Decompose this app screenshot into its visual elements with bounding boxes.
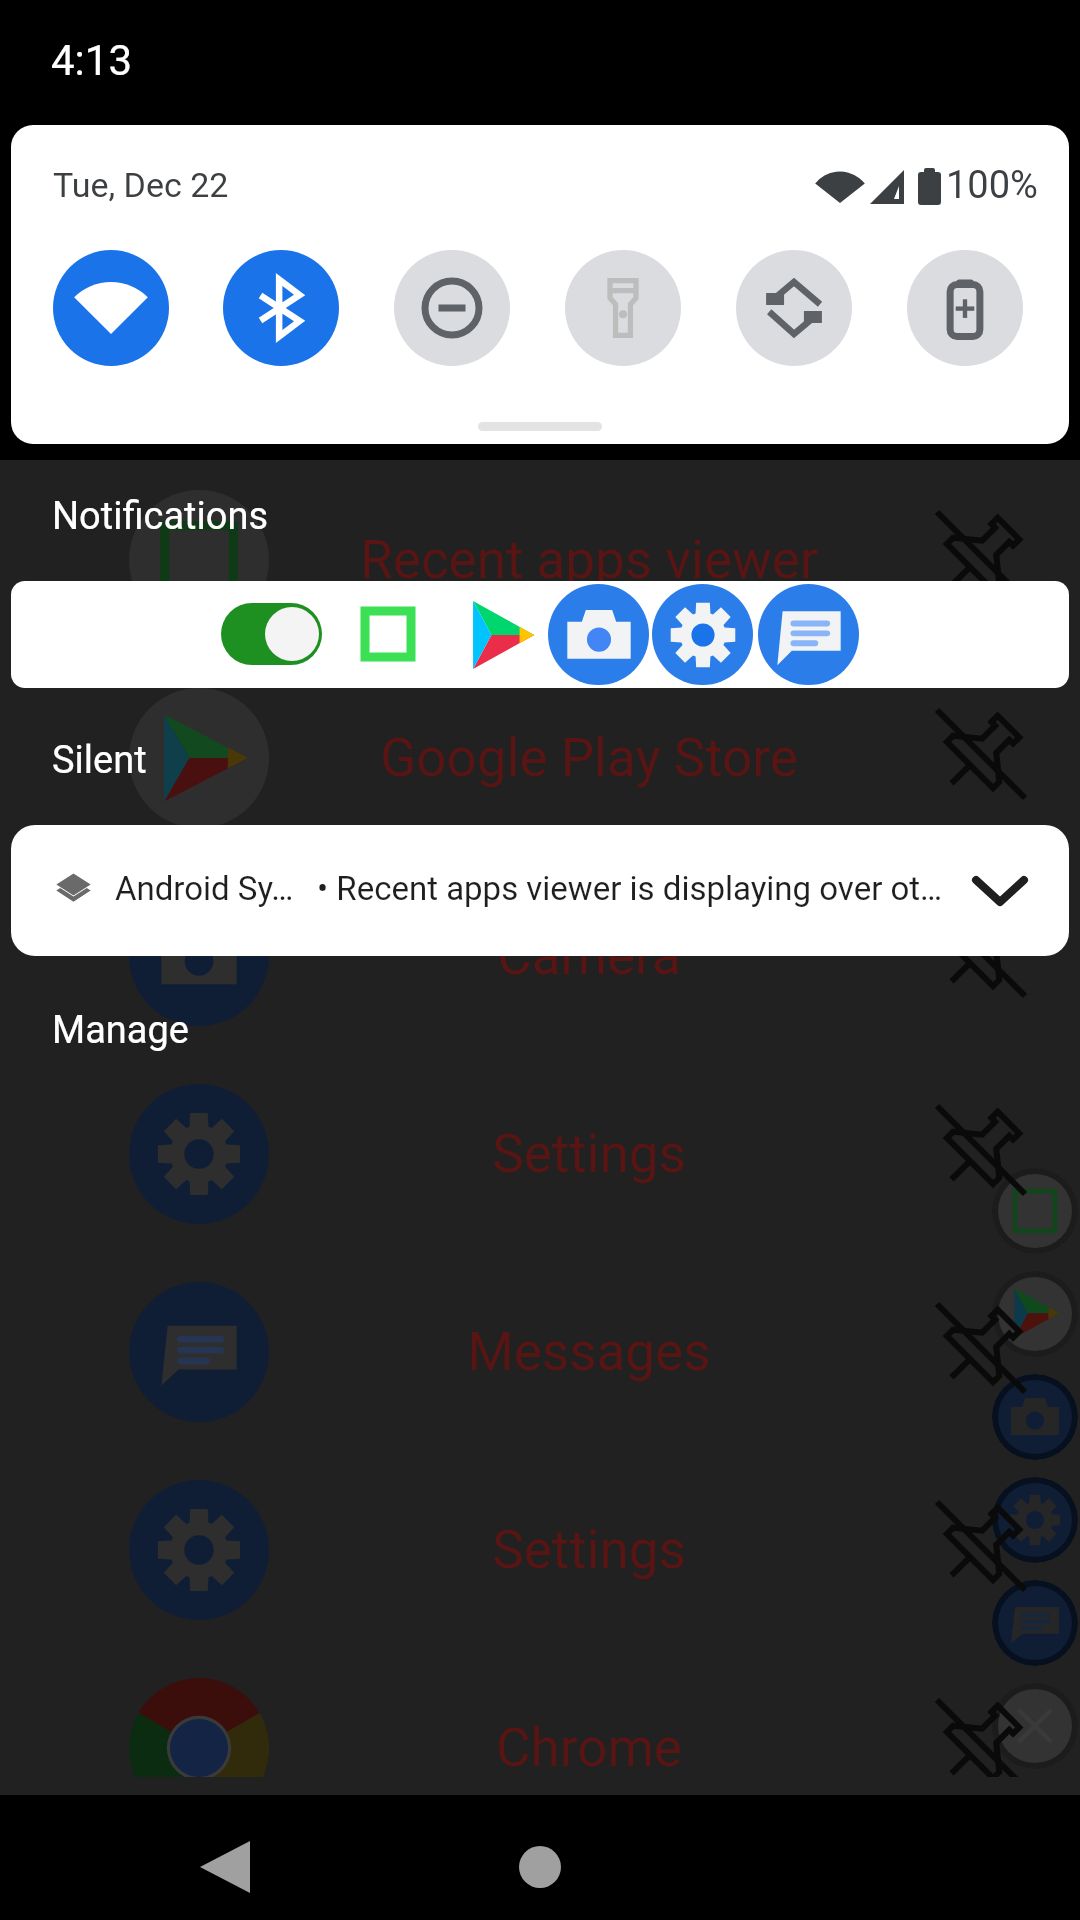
staticText: Recent apps viewer xyxy=(360,529,818,591)
staticText: • Recent apps viewer is displaying over … xyxy=(317,869,943,908)
button[interactable]: Messages xyxy=(758,584,859,685)
button[interactable]: Expand notification xyxy=(955,861,1045,921)
staticText: Chrome xyxy=(496,1717,682,1777)
staticText: Notifications xyxy=(52,494,269,539)
staticText: Android Sy… xyxy=(115,869,294,908)
button[interactable]: Messages xyxy=(0,1253,1080,1451)
button[interactable]: Unpin Camera xyxy=(913,886,1053,1026)
button[interactable]: Settings xyxy=(992,1477,1078,1563)
button[interactable]: Back xyxy=(165,1807,285,1920)
button[interactable]: Unpin Settings xyxy=(913,1480,1053,1620)
button[interactable]: Unpin Messages xyxy=(913,1282,1053,1422)
button[interactable]: Wi-Fi xyxy=(53,250,169,366)
staticText: Settings xyxy=(492,1519,686,1581)
button[interactable]: Google Play Store xyxy=(992,1271,1078,1357)
button[interactable]: Google Play Store xyxy=(463,595,543,675)
button[interactable]: Camera xyxy=(548,584,649,685)
staticText: Settings xyxy=(492,1123,686,1185)
staticText: 100% xyxy=(946,163,1038,208)
button[interactable]: Settings xyxy=(0,1055,1080,1253)
button[interactable]: Home xyxy=(480,1807,600,1920)
staticText: Tue, Dec 22 xyxy=(53,165,229,205)
button[interactable]: Android Sy… xyxy=(11,825,1069,956)
staticText: Manage xyxy=(52,1008,189,1053)
staticText: Google Play Store xyxy=(380,727,798,789)
button[interactable]: Stop overlay xyxy=(992,1168,1078,1254)
staticText: Camera xyxy=(497,925,681,987)
button[interactable]: Settings xyxy=(0,1451,1080,1649)
button[interactable]: Camera xyxy=(992,1374,1078,1460)
button[interactable]: Messages xyxy=(992,1580,1078,1666)
button[interactable]: Stop overlay xyxy=(361,607,415,661)
button[interactable]: Close xyxy=(992,1683,1078,1769)
button[interactable]: Battery saver xyxy=(907,250,1023,366)
button[interactable]: Bluetooth xyxy=(223,250,339,366)
button[interactable]: Unpin Recent apps viewer xyxy=(913,490,1053,630)
button[interactable]: Google Play Store xyxy=(0,659,1080,857)
staticText: Messages xyxy=(467,1321,711,1383)
button[interactable]: Flashlight xyxy=(565,250,681,366)
button[interactable]: Unpin Settings xyxy=(913,1084,1053,1224)
button[interactable]: Toggle overlay xyxy=(221,603,322,665)
button[interactable]: Chrome xyxy=(0,1649,1080,1777)
button[interactable]: Auto-rotate xyxy=(736,250,852,366)
button[interactable]: Unpin Google Play Store xyxy=(913,688,1053,828)
button[interactable]: Settings xyxy=(652,584,753,685)
staticText: 4:13 xyxy=(51,36,132,85)
button[interactable]: Recent apps viewer xyxy=(0,461,1080,659)
staticText: Silent xyxy=(52,738,147,783)
button[interactable]: Camera xyxy=(0,857,1080,1055)
button[interactable]: Unpin Chrome xyxy=(913,1678,1053,1777)
button[interactable]: Do not disturb xyxy=(394,250,510,366)
